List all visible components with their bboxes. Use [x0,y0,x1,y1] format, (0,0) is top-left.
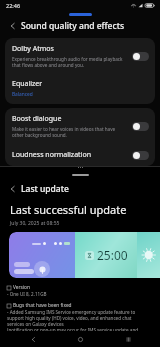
staticText: Balanced [12,91,33,98]
button[interactable]: Home [65,331,95,347]
staticText: July 30, 2025 at 08:55 [10,220,60,227]
staticText: Boost dialogue [12,114,62,124]
button[interactable]: Toggle [132,52,149,61]
staticText: (notification or pop-up may occur for IM… [7,327,139,331]
staticText: Last successful update [10,202,127,217]
button[interactable]: Dolby Atmos [5,38,155,74]
button[interactable]: Back [6,182,19,195]
staticText: Make it easier to hear voices in videos … [12,126,127,138]
staticText: 25:00 [97,247,128,263]
staticText: Experience breakthrough audio for media … [12,56,127,68]
button[interactable]: Back [18,331,48,347]
button[interactable]: Split screen handle [76,165,85,170]
staticText: Version [13,284,30,291]
staticText: - Added Samsung IMS Service emergency up… [7,309,136,315]
button[interactable]: Boost dialogue [5,108,155,144]
staticText: Last update [21,183,69,195]
staticText: Sound quality and effects [21,20,125,32]
button[interactable]: Back [6,19,19,32]
button[interactable]: Equalizer [5,74,155,104]
button[interactable]: Toggle [132,122,149,131]
staticText: services on Galaxy devices [7,321,64,327]
staticText: support high quality (HD) voice, video, … [7,315,132,321]
staticText: - One UI 8, 2.11GB [7,291,47,297]
button[interactable]: Toggle [132,151,149,160]
staticText: Dolby Atmos [12,44,54,54]
button[interactable]: Loudness normalization [5,144,155,166]
staticText: Bugs that have been fixed [13,302,72,309]
staticText: Equalizer [12,79,43,89]
staticText: 22:46 [6,2,21,9]
button[interactable]: Recent apps [113,331,143,347]
staticText: Loudness normalization [12,150,91,160]
